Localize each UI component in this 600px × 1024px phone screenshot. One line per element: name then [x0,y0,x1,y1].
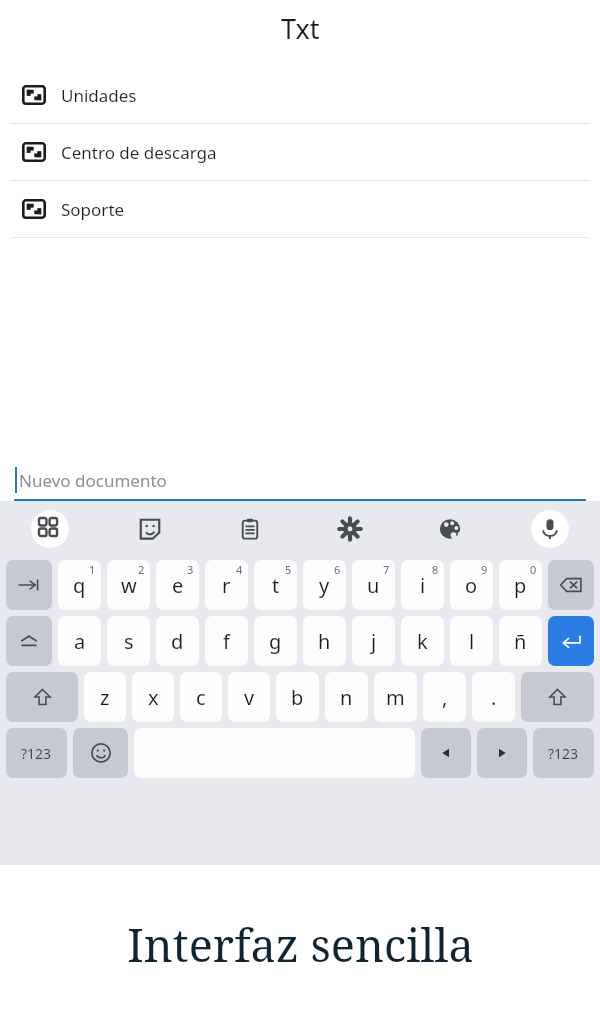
staticText: j [371,628,377,655]
staticText: t [272,572,280,599]
button[interactable]: m [374,672,417,722]
staticText: p [514,572,527,599]
staticText: b [291,684,304,711]
staticText: v [244,684,255,711]
staticText: 2 [138,562,145,577]
staticText: 9 [481,562,488,577]
staticText: h [318,628,331,655]
button[interactable]: l [450,616,493,666]
button[interactable]: ?123 [6,728,67,778]
button[interactable]: v [228,672,270,722]
staticText: 4 [236,562,243,577]
button[interactable]: t [254,560,297,610]
button[interactable]: Key [6,560,52,610]
button[interactable]: g [254,616,297,666]
button[interactable]: y [303,560,346,610]
button[interactable]: ñ [499,616,542,666]
button[interactable]: Nuevo documento [0,461,600,501]
button[interactable]: c [180,672,222,722]
staticText: 0 [530,562,537,577]
button[interactable]: Key [521,672,594,722]
button[interactable]: i [401,560,444,610]
button[interactable]: d [156,616,199,666]
button[interactable]: n [325,672,368,722]
button[interactable]: r [205,560,248,610]
button[interactable]: Clipboard [200,501,300,557]
button[interactable]: Soporte [0,181,600,237]
staticText: m [386,684,405,711]
staticText: q [73,572,86,599]
staticText: e [172,572,184,599]
staticText: r [222,572,231,599]
staticText: i [420,572,426,599]
staticText: g [269,628,282,655]
button[interactable]: Enter [548,616,594,666]
button[interactable]: e [156,560,199,610]
staticText: , [442,684,448,711]
staticText: f [223,628,230,655]
staticText: Interfaz sencilla [127,914,474,975]
staticText: c [196,684,206,711]
button[interactable]: Key [6,672,78,722]
staticText: w [121,572,137,599]
button[interactable]: q [58,560,101,610]
button[interactable]: Voice input [500,501,600,557]
staticText: ?123 [548,744,579,763]
staticText: d [171,628,184,655]
button[interactable]: Key [73,728,128,778]
staticText: n [340,684,353,711]
staticText: Unidades [61,84,137,107]
staticText: 6 [334,562,341,577]
staticText: k [417,628,428,655]
button[interactable]: Unidades [0,67,600,123]
button[interactable]: o [450,560,493,610]
staticText: 5 [285,562,292,577]
button[interactable]: p [499,560,542,610]
button[interactable]: Centro de descarga [0,124,600,180]
staticText: ñ [514,628,527,655]
button[interactable]: a [58,616,101,666]
button[interactable]: h [303,616,346,666]
staticText: Soporte [61,198,125,221]
staticText: y [319,572,330,599]
button[interactable]: Key [477,728,527,778]
staticText: Txt [281,10,320,47]
button[interactable]: b [276,672,319,722]
button[interactable]: f [205,616,248,666]
staticText: ?123 [21,744,52,763]
button[interactable]: , [423,672,466,722]
button[interactable]: x [132,672,174,722]
button[interactable]: Theme [400,501,500,557]
button[interactable]: u [352,560,395,610]
staticText: z [100,684,110,711]
staticText: Centro de descarga [61,141,217,164]
button[interactable]: s [107,616,150,666]
staticText: o [465,572,478,599]
staticText: 8 [432,562,439,577]
button[interactable]: Apps [0,501,100,557]
staticText: x [148,684,159,711]
staticText: l [469,628,475,655]
staticText: Nuevo documento [19,469,167,492]
staticText: . [491,684,497,711]
button[interactable]: j [352,616,395,666]
button[interactable]: Key [548,560,594,610]
button[interactable]: Stickers [100,501,200,557]
staticText: 1 [89,562,96,577]
staticText: 7 [383,562,390,577]
button[interactable]: Settings [300,501,400,557]
button[interactable]: Key [6,616,52,666]
button[interactable]: k [401,616,444,666]
staticText: s [124,628,134,655]
button[interactable]: ?123 [533,728,594,778]
staticText: u [367,572,380,599]
staticText: 3 [187,562,194,577]
button[interactable]: . [472,672,515,722]
staticText: a [74,628,86,655]
button[interactable]: w [107,560,150,610]
button[interactable]: z [84,672,126,722]
button[interactable]: Key [421,728,471,778]
